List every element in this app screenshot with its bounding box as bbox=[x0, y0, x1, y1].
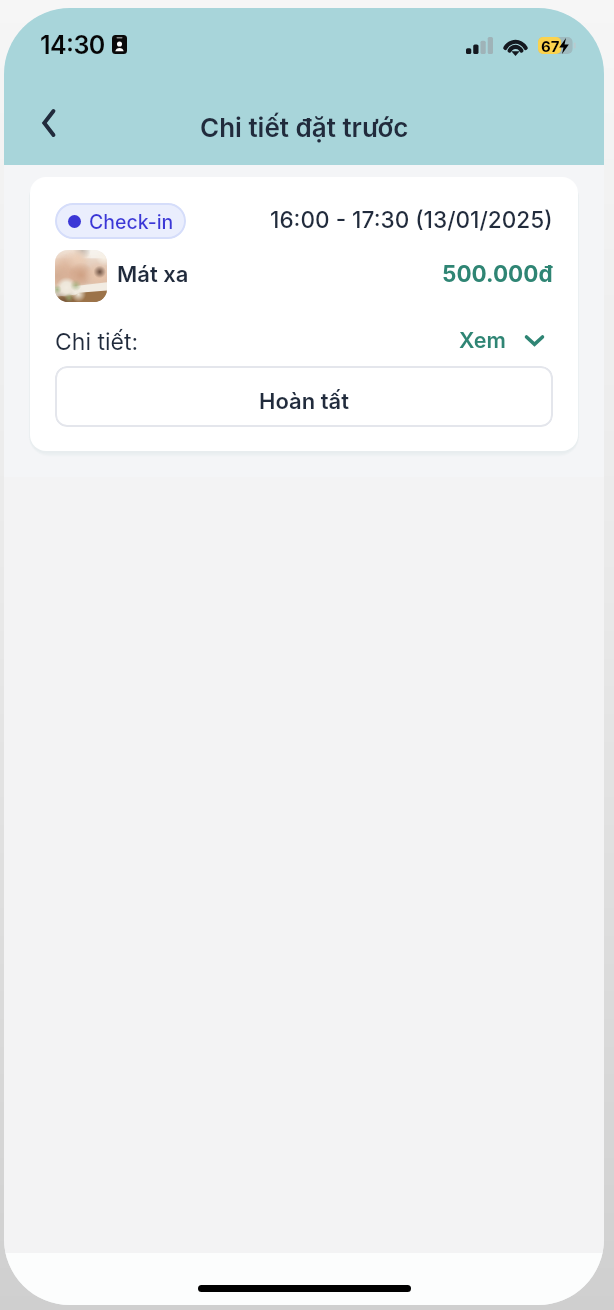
staticText: Chi tiết đặt trước bbox=[200, 112, 409, 143]
staticText: 500.000đ bbox=[442, 260, 553, 287]
button[interactable]: Hoàn tất bbox=[55, 366, 553, 427]
staticText: Chi tiết: bbox=[55, 328, 139, 356]
button[interactable]: Back bbox=[27, 101, 71, 145]
button[interactable]: Xem bbox=[459, 321, 553, 347]
staticText: 16:00 - 17:30 (13/01/2025) bbox=[270, 206, 553, 233]
button[interactable]: Home indicator bbox=[198, 1285, 411, 1292]
staticText: Hoàn tất bbox=[259, 388, 349, 415]
staticText: Mát xa bbox=[117, 261, 189, 288]
staticText: 14:30 bbox=[40, 30, 105, 60]
button[interactable]: Check-in bbox=[55, 203, 186, 239]
staticText: Xem bbox=[459, 327, 506, 353]
staticText: Check-in bbox=[89, 210, 174, 234]
staticText: 67 bbox=[541, 37, 560, 54]
